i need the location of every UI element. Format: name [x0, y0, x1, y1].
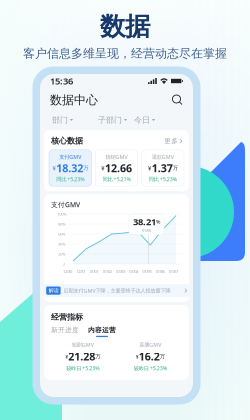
button[interactable]: 更多 [164, 137, 182, 145]
staticText: 直播GMV [139, 341, 161, 348]
staticText: 子部门 [98, 115, 122, 125]
staticText: 核心数据 [51, 136, 83, 146]
button[interactable]: 退款GMV [142, 150, 184, 186]
staticText: 01/03 [116, 269, 125, 274]
staticText: 01/05 [142, 228, 151, 233]
staticText: 16.2 [139, 349, 160, 364]
staticText: 新开进度 [51, 326, 79, 334]
staticText: 同比 +5.23% [56, 176, 84, 183]
staticText: 万 [160, 353, 165, 360]
staticText: 较昨日 +5.23% [66, 365, 99, 372]
button[interactable]: 搜索 [172, 94, 183, 105]
staticText: 80% [58, 221, 65, 227]
staticText: 60% [58, 231, 65, 237]
staticText: ¥ [136, 353, 139, 360]
staticText: 01/07 [169, 269, 178, 274]
staticText: 客户信息多维呈现，经营动态尽在掌握 [23, 46, 227, 61]
staticText: 12.66 [105, 161, 132, 175]
button[interactable]: 新开进度 [51, 326, 79, 337]
staticText: 21.28 [68, 349, 95, 364]
staticText: 20% [58, 251, 65, 257]
staticText: 同比 +5.23% [149, 176, 177, 183]
staticText: 18.32 [56, 161, 83, 175]
staticText: 01/04 [129, 269, 138, 274]
staticText: ¥ [65, 353, 68, 360]
staticText: 短剧GMV [72, 341, 94, 348]
staticText: 万 [83, 165, 88, 171]
button[interactable]: 解读 [43, 284, 190, 297]
staticText: 近期支付GMV下降，主要受终于达人投放量下降 [64, 287, 171, 294]
staticText: 部门 [52, 115, 68, 125]
staticText: 12/30 [63, 269, 72, 274]
staticText: % [156, 218, 160, 225]
button[interactable]: 今日 [134, 113, 155, 127]
staticText: 数据中心 [50, 93, 98, 107]
staticText: ¥ [52, 164, 56, 172]
staticText: 1.37 [152, 161, 173, 175]
staticText: 经营指标 [51, 312, 83, 322]
button[interactable]: 子部门 [98, 113, 127, 127]
staticText: 支付GMV [59, 153, 81, 160]
staticText: 38.21 [133, 215, 156, 228]
staticText: 万 [173, 165, 178, 171]
button[interactable]: 核销GMV [95, 150, 138, 186]
staticText: 40% [58, 241, 65, 247]
staticText: 今日 [134, 115, 150, 125]
staticText: ¥ [148, 164, 152, 172]
staticText: 支付GMV [51, 200, 80, 209]
staticText: 01/05 [142, 269, 151, 274]
button[interactable]: 部门 [52, 113, 73, 127]
staticText: 12/31 [76, 269, 85, 274]
staticText: 退款GMV [152, 153, 174, 160]
button[interactable]: 内容运营 [88, 326, 116, 337]
staticText: 15:36 [50, 75, 73, 87]
staticText: 100% [57, 211, 66, 217]
staticText: 0 [62, 261, 64, 267]
staticText: 内容运营 [88, 326, 116, 334]
staticText: 01/01 [90, 269, 99, 274]
staticText: 同比 +5.21% [102, 176, 130, 183]
staticText: 较昨日 +5.23% [134, 365, 167, 372]
staticText: 解读 [48, 287, 58, 294]
staticText: 更多 [164, 137, 178, 145]
staticText: 核销GMV [105, 153, 127, 160]
staticText: 万 [95, 353, 100, 360]
button[interactable]: 支付GMV [49, 150, 91, 186]
staticText: 01/02 [103, 269, 112, 274]
staticText: ¥ [101, 164, 105, 172]
staticText: 数据 [100, 11, 150, 42]
staticText: 01/06 [156, 269, 165, 274]
